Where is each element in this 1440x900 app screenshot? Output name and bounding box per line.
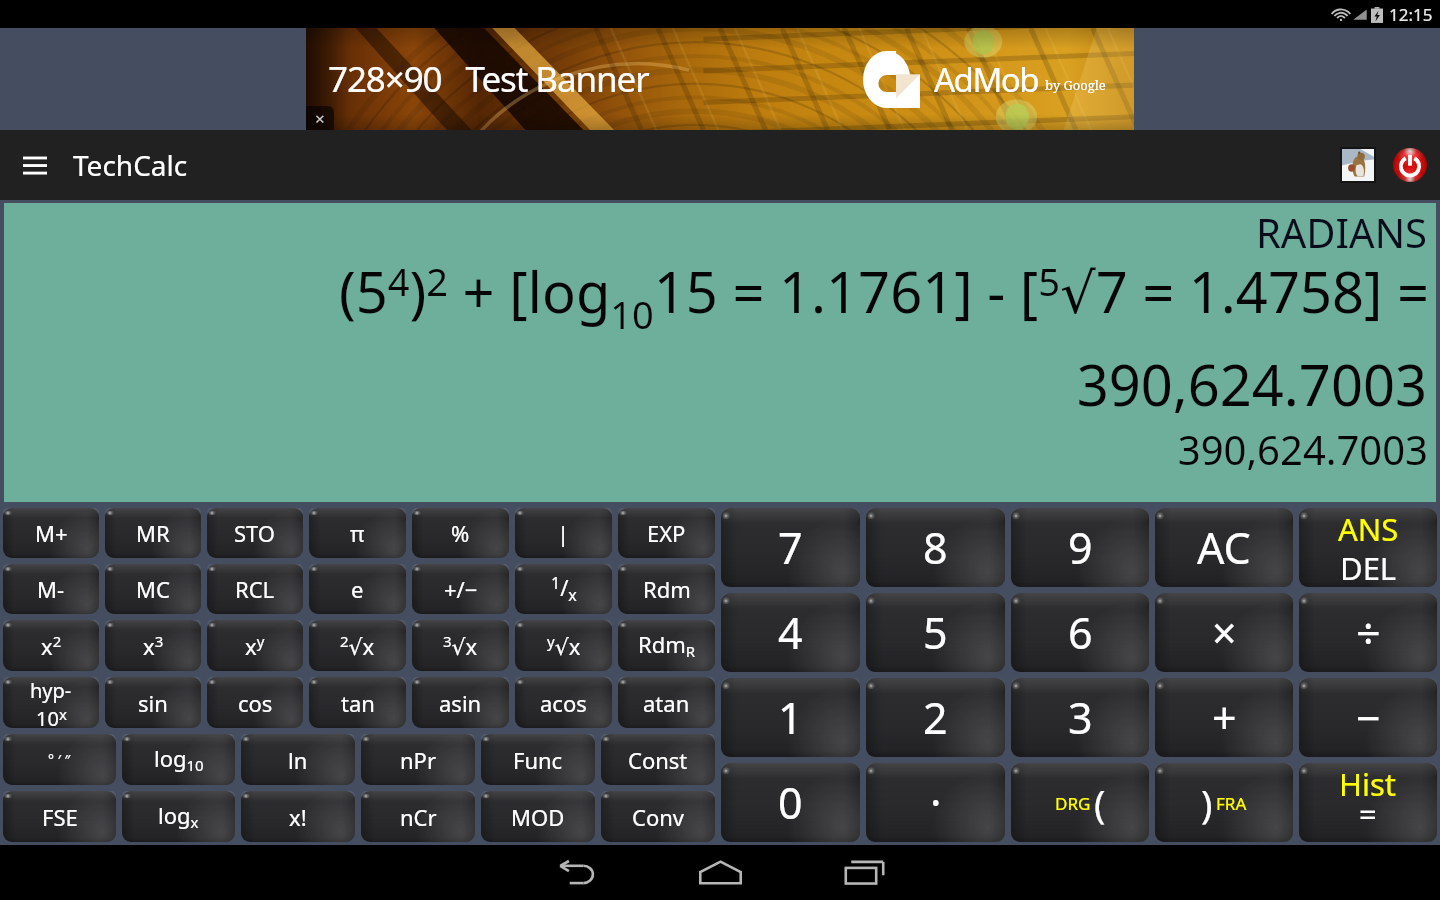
button[interactable]: + (1155, 678, 1293, 757)
staticText: AdMob (934, 57, 1039, 102)
button[interactable]: ° ′ ″ (3, 734, 116, 785)
button[interactable]: 1/x (515, 564, 612, 614)
button[interactable]: ) (1155, 763, 1293, 842)
staticText: Conv (632, 802, 684, 832)
button[interactable]: % (412, 508, 509, 558)
staticText: RADIANS (4, 205, 1427, 259)
staticText: 728×90 Test Banner (328, 55, 649, 103)
button[interactable]: 3 (1011, 678, 1149, 757)
staticText: 390,624.7003 (4, 346, 1427, 422)
staticText: M- (37, 574, 65, 604)
button[interactable]: 8 (866, 508, 1005, 587)
button[interactable]: Conv (601, 791, 715, 842)
button[interactable]: 3√x (412, 620, 509, 671)
staticText: 5 (923, 603, 948, 662)
button[interactable]: M- (3, 564, 99, 614)
button[interactable]: nPr (361, 734, 475, 785)
staticText: nCr (400, 802, 437, 832)
button[interactable]: M+ (3, 508, 99, 558)
button[interactable]: x3 (105, 620, 201, 671)
button[interactable]: Hist (1299, 763, 1437, 842)
button[interactable]: Rdm (618, 564, 715, 614)
button[interactable]: Func (481, 734, 595, 785)
button[interactable]: | (515, 508, 612, 558)
button[interactable]: log10 (122, 734, 235, 785)
staticText: ANS (1338, 508, 1399, 550)
button[interactable]: 2 (866, 678, 1005, 757)
button[interactable]: ln (241, 734, 355, 785)
button[interactable]: 4 (721, 593, 860, 672)
button[interactable]: · (866, 763, 1005, 842)
button[interactable]: Back (530, 845, 620, 900)
button[interactable]: MR (105, 508, 201, 558)
staticText: STO (234, 518, 276, 548)
button[interactable]: Recents (819, 845, 909, 900)
button[interactable]: 728×90 Test Banner (306, 28, 1134, 130)
button[interactable]: Close ad (306, 106, 334, 130)
button[interactable]: − (1299, 678, 1437, 757)
button[interactable]: RdmR (618, 620, 715, 671)
button[interactable]: xy (207, 620, 303, 671)
button[interactable]: Home (675, 845, 765, 900)
button[interactable]: RCL (207, 564, 303, 614)
button[interactable]: ANS (1299, 508, 1437, 587)
button[interactable]: asin (412, 677, 509, 728)
staticText: % (451, 518, 470, 548)
button[interactable]: tan (309, 677, 406, 728)
button[interactable]: logx (122, 791, 235, 842)
button[interactable]: STO (207, 508, 303, 558)
staticText: Rdm (643, 574, 691, 604)
button[interactable]: Menu (0, 130, 70, 200)
button[interactable]: 7 (721, 508, 860, 587)
button[interactable]: +/− (412, 564, 509, 614)
button[interactable]: Const (601, 734, 715, 785)
button[interactable]: nCr (361, 791, 475, 842)
staticText: 1 (778, 688, 803, 747)
button[interactable]: y√x (515, 620, 612, 671)
staticText: acos (540, 688, 587, 718)
button[interactable]: MOD (481, 791, 595, 842)
staticText: AC (1197, 518, 1251, 577)
button[interactable]: EXP (618, 508, 715, 558)
button[interactable]: 1 (721, 678, 860, 757)
staticText: Func (513, 745, 563, 775)
button[interactable]: Power (1388, 143, 1432, 187)
button[interactable]: 6 (1011, 593, 1149, 672)
button[interactable]: FSE (3, 791, 116, 842)
button[interactable]: sin (105, 677, 201, 728)
staticText: − (1356, 688, 1381, 747)
button[interactable]: × (1155, 593, 1293, 672)
button[interactable]: x2 (3, 620, 99, 671)
staticText: | (557, 518, 570, 548)
button[interactable]: e (309, 564, 406, 614)
button[interactable]: atan (618, 677, 715, 728)
button[interactable]: 0 (721, 763, 860, 842)
button[interactable]: π (309, 508, 406, 558)
button[interactable]: MC (105, 564, 201, 614)
button[interactable]: ÷ (1299, 593, 1437, 672)
staticText: xy (245, 631, 265, 661)
button[interactable]: RADIANS (4, 203, 1436, 502)
staticText: 12:15 (1389, 3, 1433, 26)
staticText: +/− (444, 574, 478, 604)
button[interactable]: acos (515, 677, 612, 728)
staticText: nPr (400, 745, 436, 775)
button[interactable]: DRG (1011, 763, 1149, 842)
button[interactable]: Photo (1336, 143, 1380, 187)
staticText: 0 (778, 773, 803, 832)
button[interactable]: hyp- (3, 677, 99, 728)
staticText: sin (138, 688, 168, 718)
button[interactable]: cos (207, 677, 303, 728)
button[interactable]: x! (241, 791, 355, 842)
staticText: 390,624.7003 (4, 422, 1428, 476)
staticText: x3 (143, 631, 164, 661)
staticText: × (315, 107, 325, 130)
button[interactable]: 5 (866, 593, 1005, 672)
staticText: 2 (923, 688, 948, 747)
staticText: MC (136, 574, 170, 604)
button[interactable]: 2√x (309, 620, 406, 671)
staticText: ° ′ ″ (48, 750, 71, 769)
button[interactable]: AC (1155, 508, 1293, 587)
button[interactable]: 9 (1011, 508, 1149, 587)
staticText: 8 (923, 518, 948, 577)
